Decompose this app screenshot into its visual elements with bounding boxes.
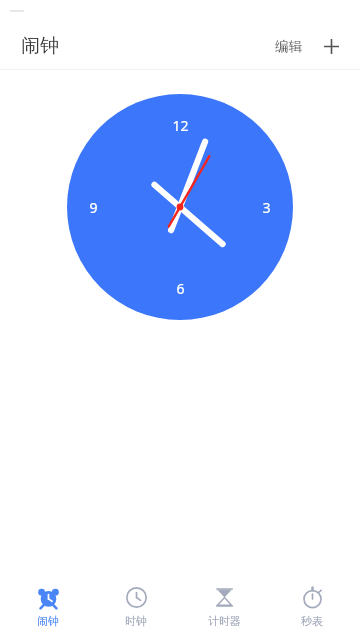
staticText: 秒表 — [301, 614, 323, 628]
staticText: 3 — [262, 198, 271, 217]
staticText: 闹钟 — [21, 34, 59, 58]
button[interactable]: 闹钟 — [8, 580, 88, 634]
staticText: 计时器 — [208, 614, 241, 628]
staticText: 9 — [89, 198, 98, 217]
staticText: 12 — [172, 116, 189, 135]
staticText: 6 — [176, 279, 185, 298]
button[interactable]: 时钟 — [96, 580, 176, 634]
button[interactable]: 计时器 — [184, 580, 264, 634]
button[interactable]: 编辑 — [269, 32, 308, 61]
staticText: 编辑 — [275, 38, 302, 55]
button[interactable]: Add alarm — [316, 31, 346, 61]
staticText: 时钟 — [125, 614, 147, 628]
staticText: 闹钟 — [37, 614, 59, 628]
button[interactable]: 秒表 — [272, 580, 352, 634]
